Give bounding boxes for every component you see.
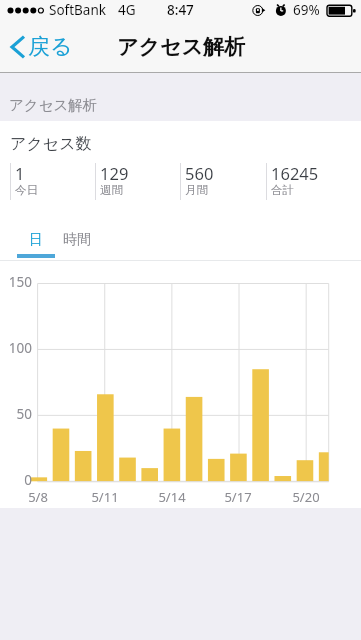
staticText: 時間 (63, 231, 91, 249)
staticText: アクセス解析 (9, 96, 98, 114)
staticText: 0 (0, 471, 32, 489)
staticText: 週間 (100, 183, 123, 197)
staticText: 5/8 (18, 488, 58, 506)
staticText: 戻る (28, 33, 73, 61)
staticText: 69% (293, 1, 320, 19)
staticText: 50 (0, 405, 32, 423)
staticText: 129 (100, 162, 129, 180)
button[interactable]: 1 (10, 163, 95, 200)
staticText: 5/20 (286, 488, 326, 506)
staticText: 16245 (271, 162, 319, 180)
button[interactable]: 日 (17, 224, 55, 258)
staticText: 今日 (15, 183, 38, 197)
staticText: 8:47 (167, 1, 194, 19)
button[interactable]: 16245 (266, 163, 352, 200)
staticText: 5/14 (152, 488, 192, 506)
staticText: 4G (118, 1, 136, 19)
button[interactable]: 時間 (59, 224, 95, 256)
button[interactable]: 560 (180, 163, 266, 200)
button[interactable]: 129 (95, 163, 180, 200)
staticText: 5/17 (218, 488, 258, 506)
staticText: 月間 (185, 183, 208, 197)
staticText: 1 (15, 162, 25, 180)
staticText: 合計 (271, 183, 294, 197)
staticText: 100 (0, 339, 32, 357)
staticText: アクセス数 (10, 134, 92, 154)
staticText: 5/11 (85, 488, 125, 506)
staticText: 560 (185, 162, 214, 180)
button[interactable]: 戻る (0, 27, 83, 67)
staticText: SoftBank (49, 1, 106, 19)
staticText: 150 (0, 273, 32, 291)
staticText: アクセス解析 (117, 34, 245, 60)
staticText: 日 (29, 231, 43, 249)
